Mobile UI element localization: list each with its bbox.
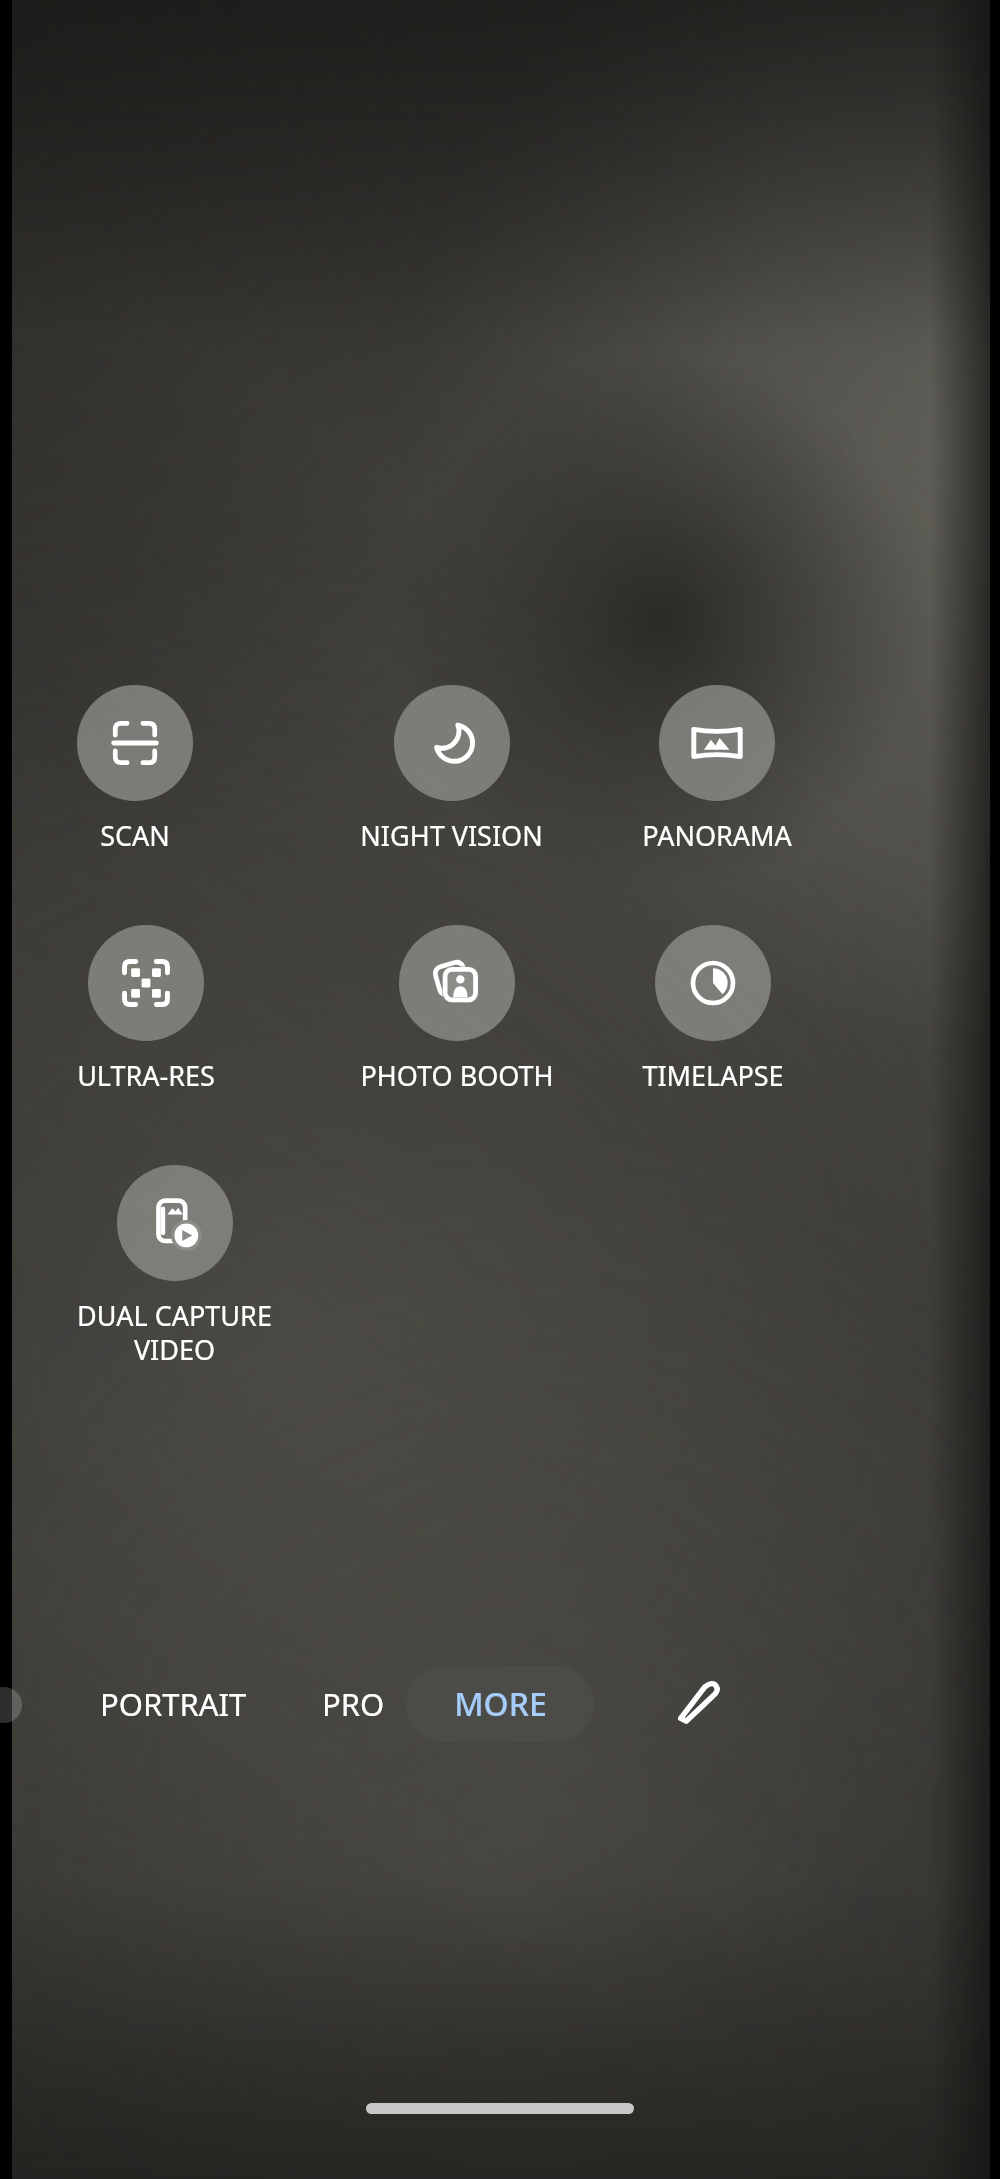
- button[interactable]: TIMELAPSE: [642, 925, 922, 1094]
- button[interactable]: ULTRA-RES: [77, 925, 357, 1094]
- staticText: PORTRAIT: [100, 1683, 247, 1725]
- button[interactable]: PHOTO BOOTH: [360, 925, 640, 1094]
- staticText: NIGHT VISION: [360, 817, 543, 854]
- staticText: DUAL CAPTURE VIDEO: [77, 1297, 272, 1368]
- button[interactable]: SCAN: [77, 685, 357, 854]
- staticText: PRO: [322, 1683, 385, 1725]
- staticText: TIMELAPSE: [642, 1057, 784, 1094]
- button[interactable]: PORTRAIT: [100, 1655, 247, 1753]
- staticText: SCAN: [100, 817, 170, 854]
- button[interactable]: MORE: [406, 1666, 594, 1742]
- button[interactable]: PRO: [322, 1655, 385, 1753]
- button[interactable]: PANORAMA: [642, 685, 922, 854]
- staticText: ULTRA-RES: [77, 1057, 215, 1094]
- button[interactable]: Edit modes: [656, 1665, 734, 1743]
- button[interactable]: NIGHT VISION: [360, 685, 640, 854]
- staticText: PANORAMA: [642, 817, 792, 854]
- staticText: MORE: [454, 1682, 547, 1726]
- staticText: PHOTO BOOTH: [360, 1057, 554, 1094]
- button[interactable]: DUAL CAPTURE VIDEO: [77, 1165, 357, 1368]
